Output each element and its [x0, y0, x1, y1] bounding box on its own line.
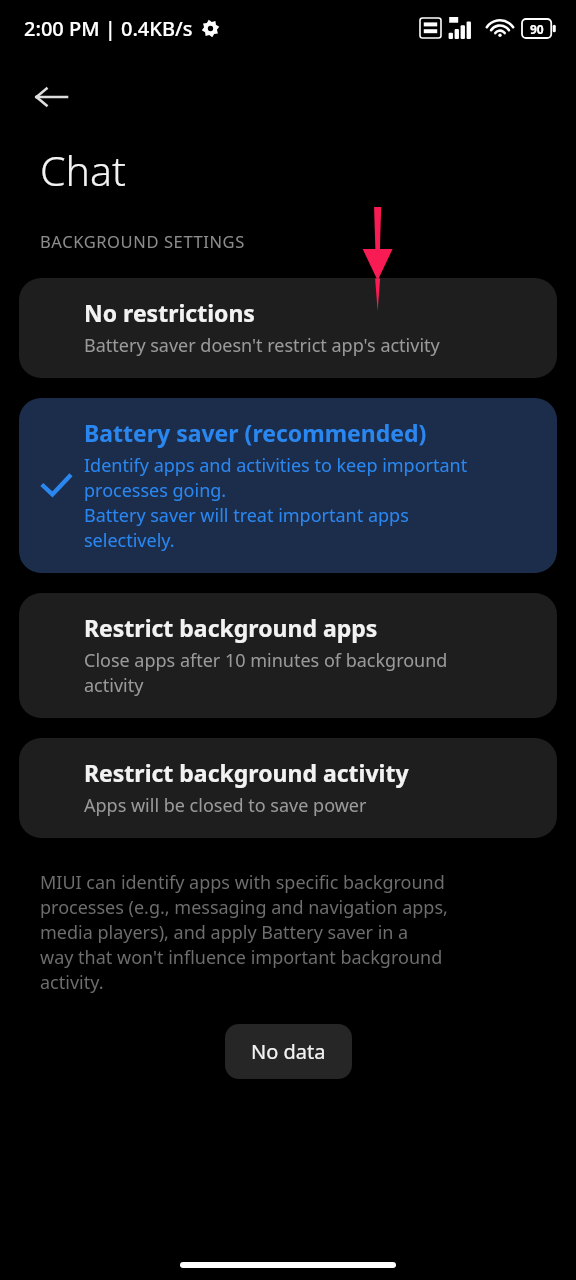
- staticText: Battery saver will treat important apps: [84, 503, 409, 528]
- button[interactable]: No data: [225, 1024, 352, 1079]
- staticText: activity.: [40, 970, 104, 995]
- button[interactable]: Restrict background activity: [19, 738, 557, 838]
- button[interactable]: Back: [24, 70, 78, 124]
- staticText: Identify apps and activities to keep imp…: [84, 453, 468, 478]
- staticText: BACKGROUND SETTINGS: [40, 230, 245, 252]
- staticText: processes going.: [84, 478, 227, 503]
- button[interactable]: Battery saver (recommended): [19, 398, 557, 573]
- staticText: way that won't influence important backg…: [40, 945, 443, 970]
- staticText: activity: [84, 673, 144, 698]
- staticText: Battery saver doesn't restrict app's act…: [84, 333, 440, 358]
- staticText: 2:00 PM | 0.4KB/s: [24, 15, 193, 42]
- staticText: No data: [251, 1038, 326, 1065]
- staticText: media players), and apply Battery saver …: [40, 920, 409, 945]
- staticText: Restrict background activity: [84, 757, 409, 788]
- staticText: Apps will be closed to save power: [84, 793, 367, 818]
- staticText: Chat: [40, 142, 126, 198]
- staticText: MIUI can identify apps with specific bac…: [40, 870, 445, 895]
- staticText: 90: [530, 21, 544, 37]
- button[interactable]: No restrictions: [19, 278, 557, 378]
- staticText: Close apps after 10 minutes of backgroun…: [84, 648, 448, 673]
- button[interactable]: Restrict background apps: [19, 593, 557, 718]
- staticText: processes (e.g., messaging and navigatio…: [40, 895, 448, 920]
- staticText: Battery saver (recommended): [84, 417, 427, 448]
- staticText: No restrictions: [84, 297, 255, 328]
- staticText: Restrict background apps: [84, 612, 378, 643]
- staticText: selectively.: [84, 528, 175, 553]
